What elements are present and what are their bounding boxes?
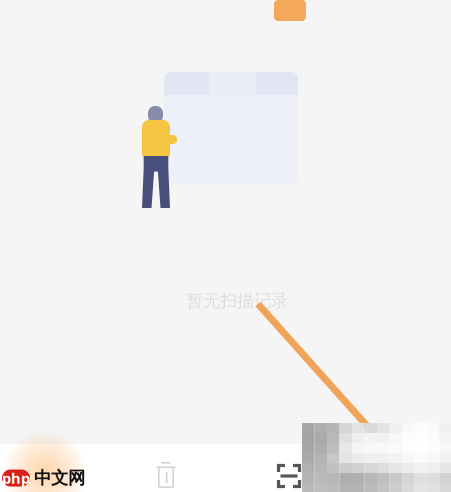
- staticText: 暂无扫描记录: [186, 290, 288, 312]
- button[interactable]: Delete: [135, 451, 197, 492]
- staticText: 中文网: [34, 467, 85, 489]
- staticText: php: [2, 468, 30, 488]
- button[interactable]: Scan: [258, 452, 320, 492]
